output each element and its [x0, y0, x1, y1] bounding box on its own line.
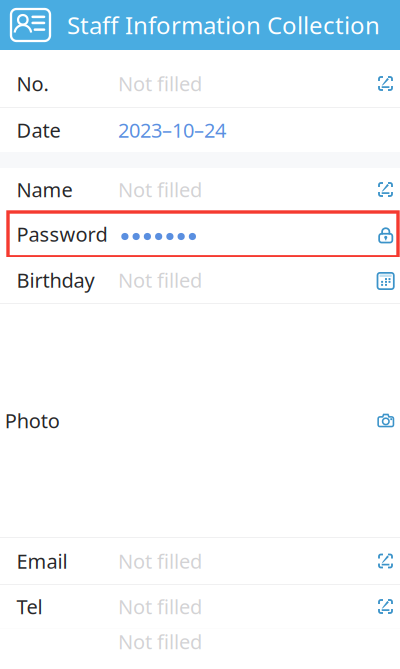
staticText: Not filled — [118, 628, 202, 655]
staticText: Not filled — [118, 548, 202, 574]
staticText: Not filled — [118, 267, 202, 293]
button[interactable]: Name — [0, 168, 400, 211]
staticText: Not filled — [118, 176, 202, 203]
button[interactable]: Date — [0, 108, 400, 152]
staticText: Password — [17, 221, 108, 247]
button[interactable]: Photo — [0, 304, 400, 537]
button[interactable]: Staff card — [0, 0, 67, 50]
button[interactable]: Birthday — [0, 257, 400, 303]
button[interactable]: Tel — [0, 585, 400, 628]
button[interactable]: Password — [0, 211, 400, 257]
staticText: 2023–10–24 — [118, 117, 226, 143]
button[interactable]: Email — [0, 538, 400, 584]
staticText: Not filled — [118, 70, 202, 97]
staticText: Tel — [17, 593, 43, 620]
staticText: Date — [17, 117, 61, 143]
staticText: Staff Information Collection — [67, 9, 380, 41]
button[interactable]: No. — [0, 60, 400, 107]
button[interactable] — [0, 629, 400, 654]
staticText: Birthday — [17, 267, 95, 293]
staticText: Photo — [5, 407, 60, 434]
staticText: No. — [17, 70, 49, 97]
staticText: Not filled — [118, 593, 202, 620]
staticText: Email — [17, 548, 68, 574]
staticText: Name — [17, 176, 73, 203]
